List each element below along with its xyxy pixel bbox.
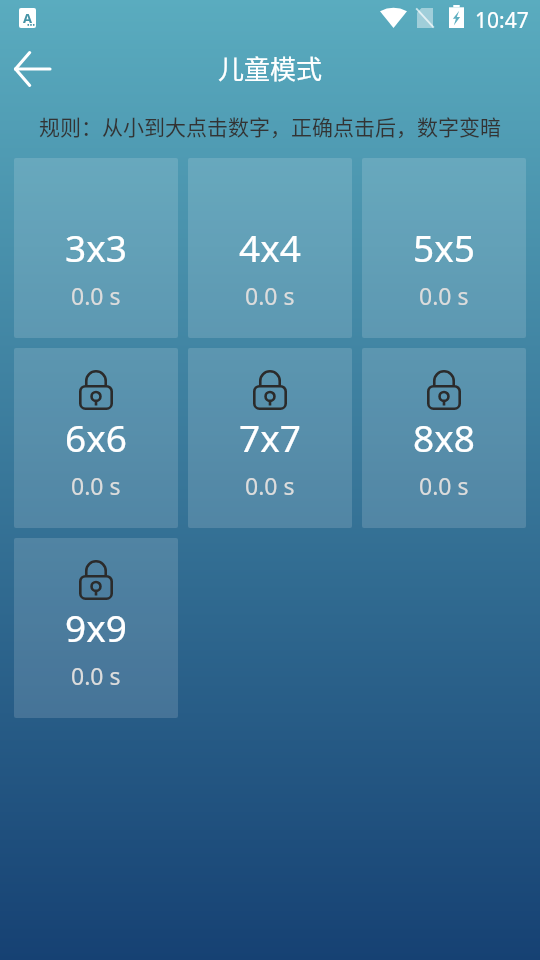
staticText: 4x4 [239,222,301,272]
staticText: 6x6 [65,412,127,462]
staticText: 0.0 s [245,280,295,311]
button[interactable]: Back [8,45,56,93]
button[interactable]: 7x7 [188,348,352,528]
button[interactable]: 8x8 [362,348,526,528]
staticText: 0.0 s [71,280,121,311]
button[interactable]: 4x4 [188,158,352,338]
staticText: 8x8 [413,412,475,462]
staticText: 规则：从小到大点击数字，正确点击后，数字变暗 [39,111,501,141]
button[interactable]: 9x9 [14,538,178,718]
staticText: 0.0 s [245,470,295,501]
button[interactable]: 6x6 [14,348,178,528]
staticText: 7x7 [239,412,301,462]
staticText: 儿童模式 [218,49,323,87]
button[interactable]: 3x3 [14,158,178,338]
staticText: A [23,9,32,27]
staticText: 5x5 [413,222,475,272]
staticText: 10:47 [475,6,529,35]
button[interactable]: 5x5 [362,158,526,338]
staticText: 0.0 s [419,280,469,311]
staticText: 0.0 s [419,470,469,501]
staticText: 3x3 [65,222,127,272]
staticText: 0.0 s [71,660,121,691]
staticText: 0.0 s [71,470,121,501]
staticText: 9x9 [65,602,127,652]
